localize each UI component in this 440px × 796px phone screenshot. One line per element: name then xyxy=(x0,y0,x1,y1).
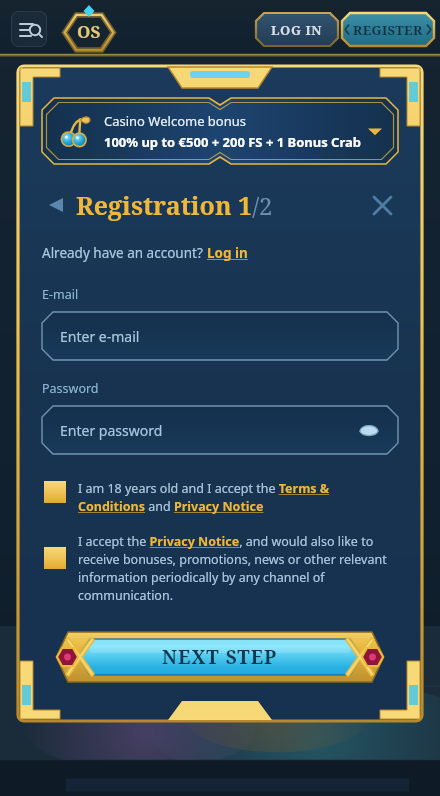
staticText: Already have an account? xyxy=(42,244,207,262)
button[interactable]: NEXT STEP xyxy=(42,626,398,688)
button[interactable]: Back xyxy=(42,191,70,219)
button[interactable]: Home xyxy=(60,7,118,51)
staticText: Log in xyxy=(207,244,248,262)
staticText: 100% up to €500 + 200 FS + 1 Bonus Crab xyxy=(104,133,362,151)
staticText: Enter e-mail xyxy=(60,327,140,346)
other: Expand bonus xyxy=(366,122,384,140)
button[interactable]: I accept the Privacy Notice, and would a… xyxy=(42,533,398,604)
button[interactable]: Show password xyxy=(358,419,380,441)
button[interactable]: Enter password xyxy=(42,406,398,454)
button[interactable]: Menu and search xyxy=(11,11,47,47)
button[interactable]: I am 18 years old and I accept the Terms… xyxy=(42,480,398,515)
staticText: E-mail xyxy=(42,286,79,303)
staticText: LOG IN xyxy=(271,21,323,39)
button[interactable]: REGISTER xyxy=(342,13,434,46)
staticText: I am 18 years old and I accept the Terms… xyxy=(78,480,398,515)
staticText: I accept the Privacy Notice, and would a… xyxy=(78,533,398,604)
staticText: Casino Welcome bonus xyxy=(104,112,247,130)
staticText: OS xyxy=(77,20,101,43)
button[interactable]: LOG IN xyxy=(256,13,338,46)
button[interactable]: Log in xyxy=(207,244,248,262)
button[interactable]: Enter e-mail xyxy=(42,312,398,360)
staticText: Password xyxy=(42,380,99,397)
staticText: Registration 1/2 xyxy=(76,188,273,222)
button[interactable]: Casino Welcome bonus xyxy=(42,98,398,164)
staticText: REGISTER xyxy=(353,21,423,39)
button[interactable]: Close xyxy=(366,189,398,221)
staticText: NEXT STEP xyxy=(162,644,278,670)
staticText: Enter password xyxy=(60,421,163,440)
